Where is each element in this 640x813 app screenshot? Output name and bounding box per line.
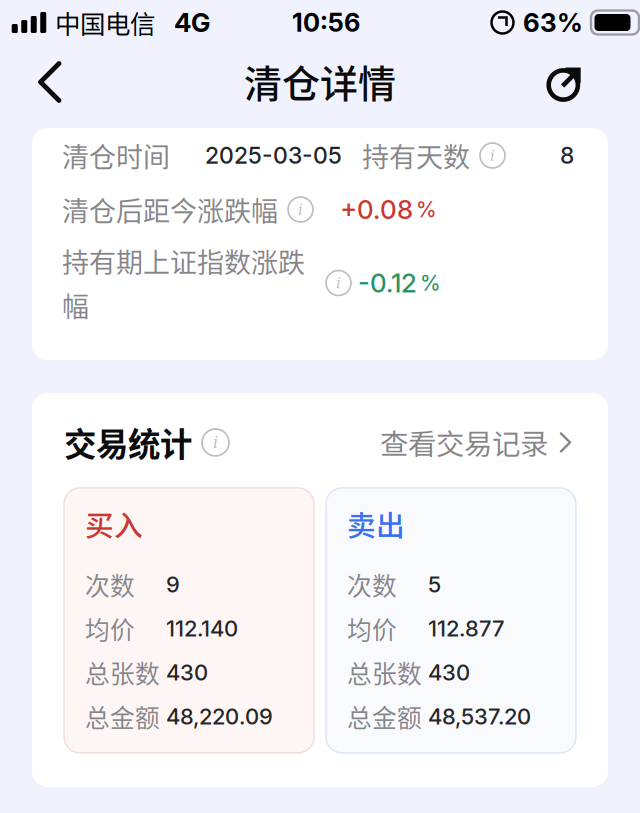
staticText: 均价 [347, 611, 397, 646]
button[interactable]: 查看交易记录 [380, 422, 576, 463]
staticText: 均价 [85, 611, 135, 646]
staticText: 次数 [85, 567, 135, 602]
staticText: i [298, 201, 303, 218]
staticText: 清仓详情 [244, 53, 396, 108]
staticText: 中国电信 [55, 4, 155, 41]
button[interactable]: Back [18, 55, 76, 114]
staticText: 次数 [347, 567, 397, 602]
staticText: 4G [174, 7, 210, 38]
staticText: 2025-03-05 [205, 142, 342, 169]
staticText: 持有天数 [362, 136, 470, 175]
staticText: 总张数 [347, 655, 422, 690]
staticText: 430 [166, 659, 208, 686]
button[interactable]: Share [539, 55, 597, 114]
staticText: 5 [428, 571, 441, 598]
staticText: 交易统计 [64, 419, 192, 466]
staticText: 48,220.09 [166, 703, 273, 730]
staticText: -0.12 [358, 267, 417, 299]
staticText: 430 [428, 659, 470, 686]
staticText: % [420, 270, 441, 296]
staticText: 买入 [85, 503, 143, 544]
staticText: 48,537.20 [428, 703, 531, 730]
staticText: 持有期上证指数涨跌 [62, 241, 305, 280]
staticText: 总张数 [85, 655, 160, 690]
staticText: 总金额 [85, 699, 160, 734]
staticText: 10:56 [292, 7, 360, 38]
staticText: 幅 [62, 285, 89, 325]
staticText: 63% [523, 7, 583, 38]
staticText: 清仓后距今涨跌幅 [62, 190, 278, 229]
staticText: i [490, 147, 495, 164]
staticText: 总金额 [347, 699, 422, 734]
staticText: 9 [166, 571, 180, 598]
staticText: 112.877 [428, 615, 504, 642]
staticText: 8 [560, 142, 574, 169]
staticText: i [336, 274, 341, 292]
staticText: i [213, 433, 218, 452]
staticText: 卖出 [347, 503, 405, 544]
staticText: % [416, 197, 437, 222]
staticText: +0.08 [340, 194, 413, 225]
staticText: 查看交易记录 [380, 422, 548, 463]
staticText: 112.140 [166, 615, 238, 642]
staticText: 清仓时间 [62, 136, 170, 175]
